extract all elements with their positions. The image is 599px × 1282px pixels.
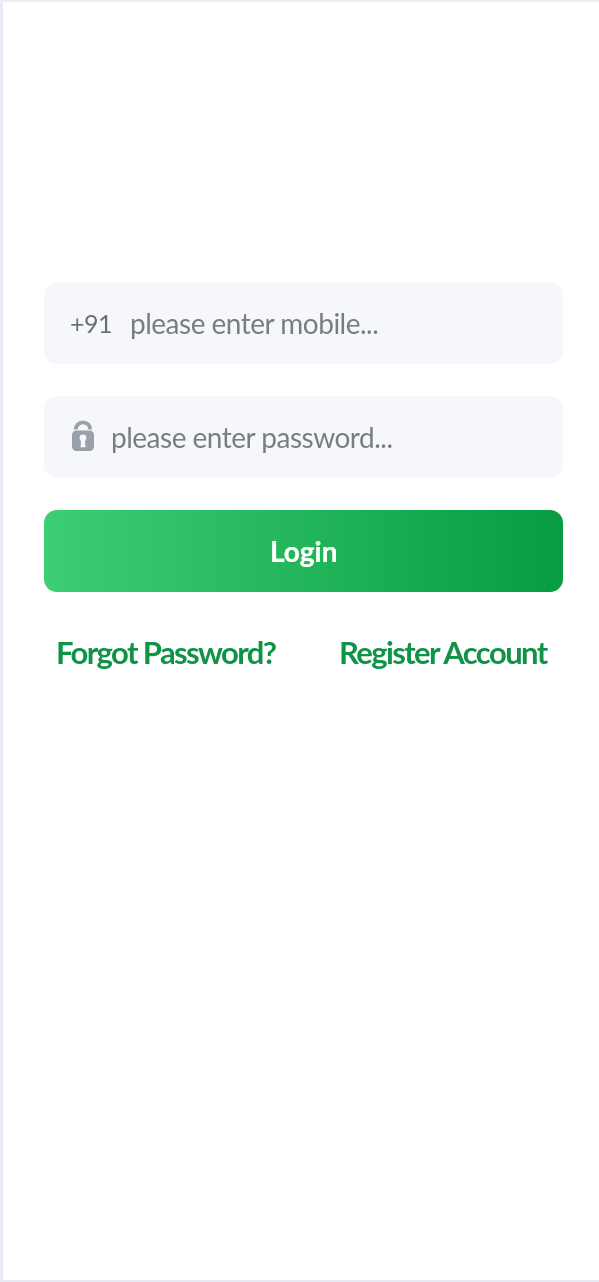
staticText: +91 — [70, 308, 113, 338]
button[interactable]: please enter password... — [44, 396, 563, 478]
button[interactable]: Login — [44, 510, 563, 592]
staticText: Login — [270, 534, 338, 568]
staticText: please enter password... — [111, 420, 393, 454]
button[interactable]: +91 — [44, 282, 563, 364]
button[interactable]: Forgot Password? — [56, 633, 276, 670]
staticText: please enter mobile... — [130, 306, 379, 340]
button[interactable]: Register Account — [339, 633, 547, 670]
